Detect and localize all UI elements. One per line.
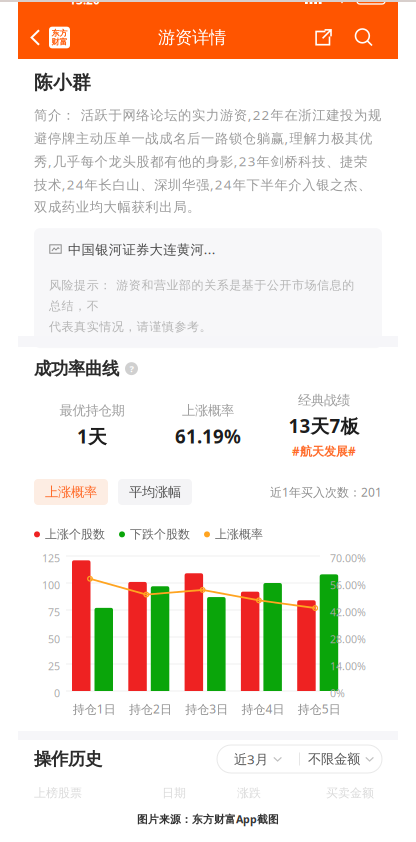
staticText: 平均涨幅	[129, 484, 181, 500]
staticText: 上涨概率	[215, 527, 263, 542]
staticText: 游资详情	[158, 27, 226, 48]
staticText: 42.00%	[330, 605, 366, 619]
button[interactable]: 上涨概率	[34, 479, 108, 505]
staticText: 13天7板	[288, 413, 359, 438]
staticText: 经典战绩	[298, 392, 350, 408]
staticText: 28.00%	[330, 632, 366, 646]
staticText: #航天发展#	[292, 443, 356, 459]
staticText: 不限金额	[308, 751, 360, 767]
button[interactable]: 不限金额	[300, 745, 382, 773]
staticText: 日期	[162, 786, 186, 800]
staticText: 图片来源：东方财富App截图	[137, 812, 279, 826]
staticText: 东方	[51, 28, 67, 38]
staticText: 上涨个股数	[45, 527, 105, 542]
staticText: 13:20	[69, 0, 100, 8]
staticText: 持仓4日	[241, 701, 284, 717]
staticText: 14.00%	[330, 659, 366, 673]
staticText: 涨跌	[237, 786, 261, 800]
staticText: 成功率曲线	[34, 358, 119, 379]
staticText: 简介： 活跃于网络论坛的实力游资,22年在浙江建投为规 避停牌主动压单一战成名后…	[34, 106, 381, 215]
button[interactable]: Search	[343, 16, 398, 59]
staticText: 持仓5日	[298, 701, 341, 717]
staticText: 上涨概率	[182, 402, 234, 419]
staticText: 75	[48, 605, 60, 619]
staticText: 50	[48, 632, 60, 646]
staticText: 近3月	[234, 750, 268, 768]
staticText: 上涨概率	[45, 484, 97, 500]
staticText: 持仓3日	[185, 701, 228, 717]
staticText: 持仓2日	[129, 701, 172, 717]
staticText: 风险提示： 游资和营业部的关系是基于公开市场信息的总结，不 代表真实情况，请谨慎…	[49, 278, 354, 334]
staticText: 61.19%	[175, 424, 241, 449]
staticText: 上榜股票	[34, 786, 82, 800]
staticText: 100	[42, 578, 60, 592]
staticText: 下跌个股数	[130, 527, 190, 542]
button[interactable]: Back	[18, 16, 80, 59]
staticText: 买卖金额	[326, 786, 374, 800]
button[interactable]: Share	[304, 16, 343, 59]
staticText: 25	[48, 659, 60, 673]
button[interactable]: 近3月	[217, 745, 299, 773]
staticText: 中国银河证券大连黄河路	[68, 240, 216, 258]
staticText: 1天	[77, 424, 107, 449]
staticText: 70.00%	[330, 551, 366, 565]
staticText: 56.00%	[330, 578, 366, 592]
staticText: 最优持仓期	[59, 402, 124, 419]
staticText: 近1年买入次数：201	[270, 484, 382, 500]
button[interactable]: 平均涨幅	[118, 479, 192, 505]
staticText: 0	[54, 686, 60, 700]
staticText: 125	[42, 551, 60, 565]
staticText: 陈小群	[34, 71, 91, 94]
staticText: ?	[129, 362, 133, 375]
staticText: 0%	[330, 686, 345, 700]
staticText: 操作历史	[34, 748, 102, 770]
staticText: 财富	[51, 37, 67, 47]
staticText: 持仓1日	[73, 701, 116, 717]
